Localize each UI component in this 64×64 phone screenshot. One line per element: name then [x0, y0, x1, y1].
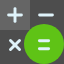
button[interactable]: Calculator keypad — [0, 0, 64, 64]
